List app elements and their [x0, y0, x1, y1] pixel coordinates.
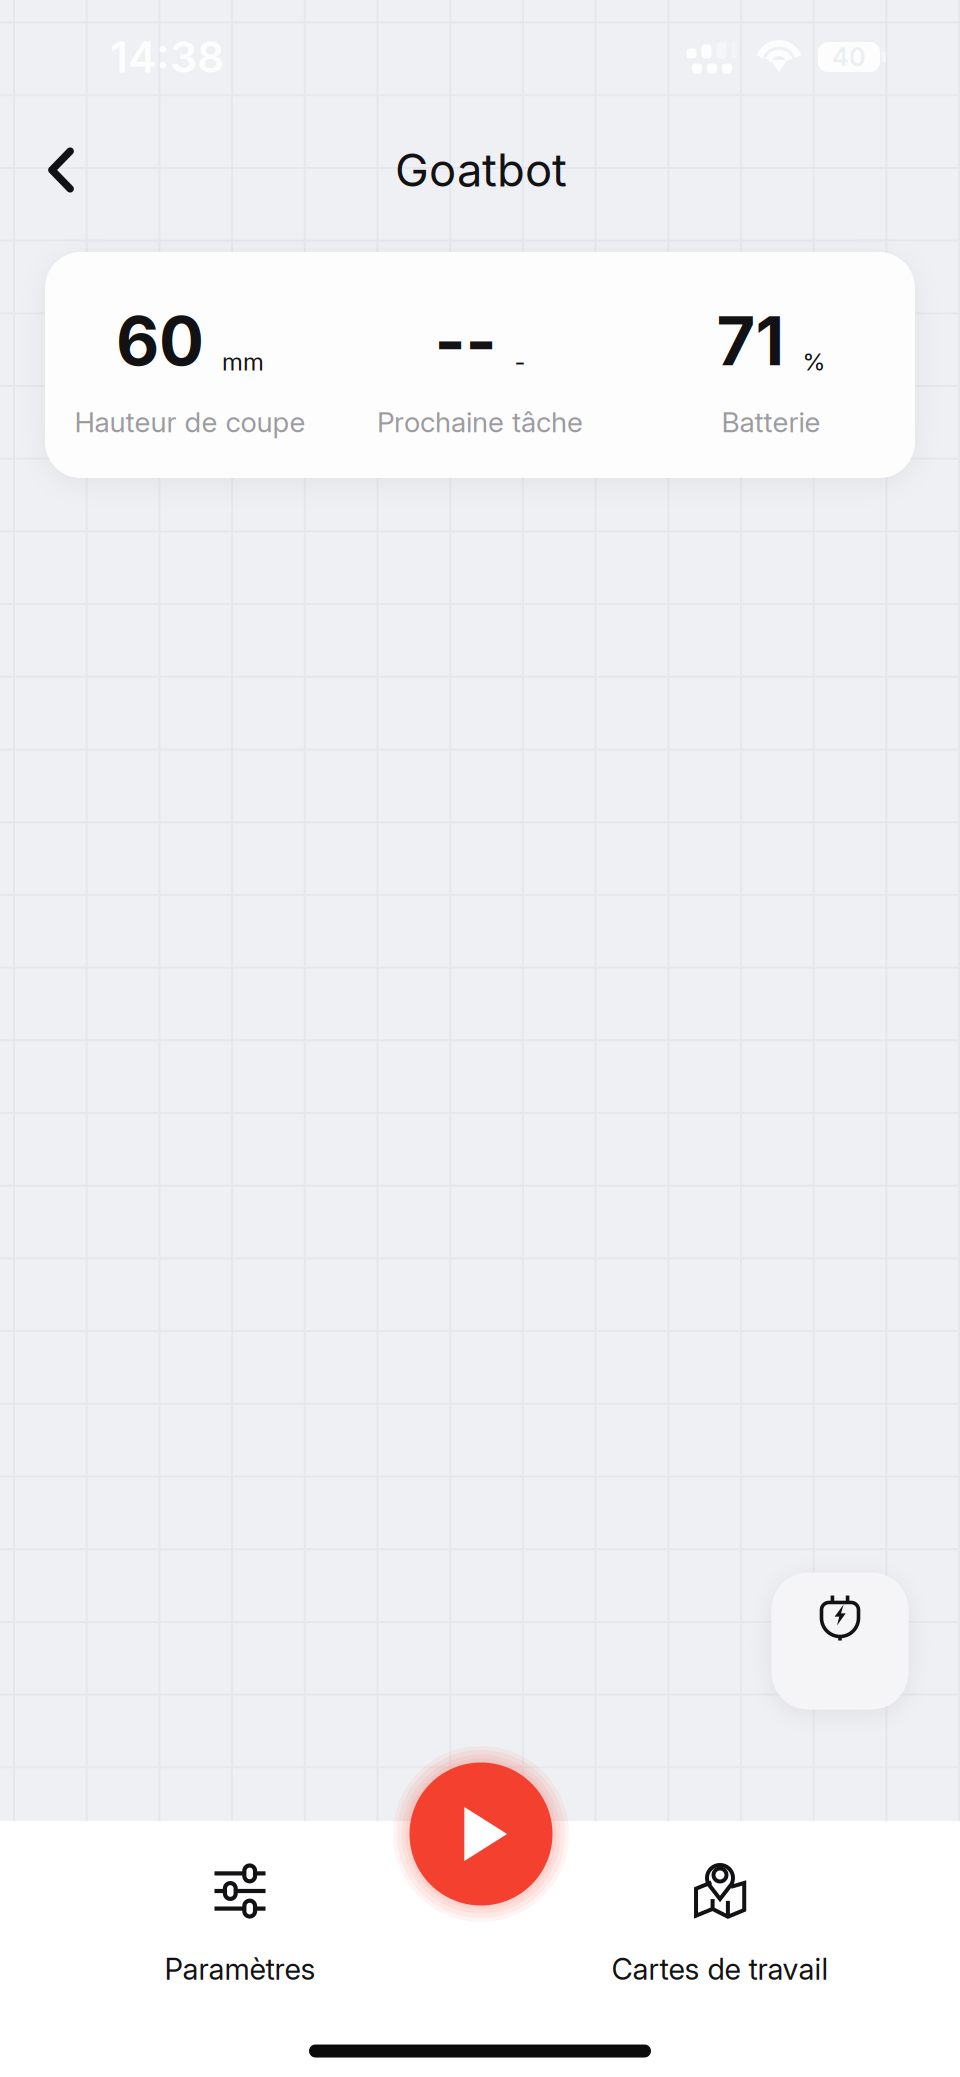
staticText: Goatbot: [395, 143, 567, 197]
staticText: Cartes de travail: [611, 1951, 828, 1987]
staticText: -: [514, 347, 525, 376]
staticText: Batterie: [721, 405, 820, 439]
staticText: %: [802, 347, 825, 376]
staticText: Prochaine tâche: [377, 405, 583, 439]
staticText: --: [434, 301, 496, 381]
button[interactable]: Cartes de travail: [555, 1864, 885, 2034]
button[interactable]: Start mowing: [393, 1746, 569, 1922]
staticText: Paramètres: [164, 1951, 315, 1987]
button[interactable]: Paramètres: [75, 1864, 405, 2034]
button[interactable]: Return to charging dock: [771, 1572, 908, 1709]
staticText: 14:38: [110, 31, 224, 83]
staticText: 71: [716, 301, 784, 381]
staticText: 40: [832, 42, 866, 72]
staticText: Hauteur de coupe: [74, 405, 305, 439]
button[interactable]: Back: [15, 116, 107, 224]
staticText: mm: [222, 347, 264, 376]
staticText: 60: [116, 301, 204, 381]
